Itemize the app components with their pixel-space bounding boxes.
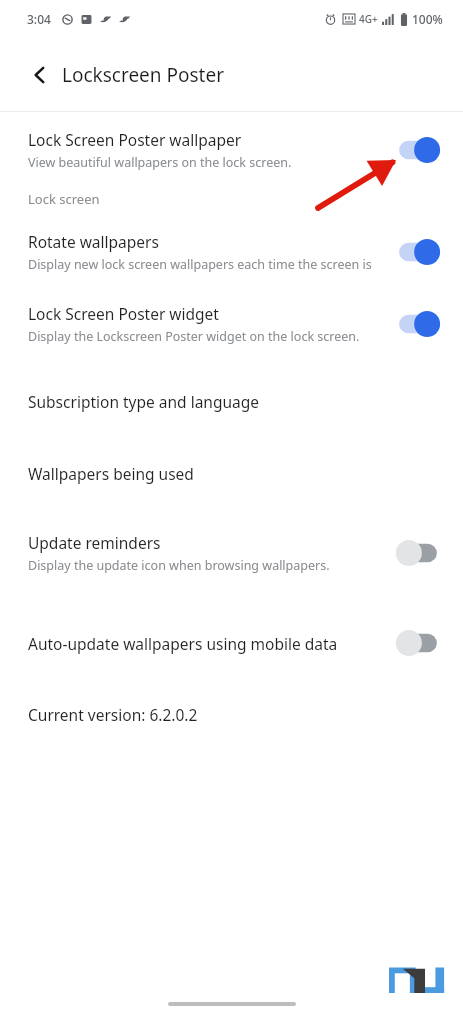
staticText: Update reminders [28, 532, 161, 553]
staticText: Display new lock screen wallpapers each … [28, 256, 385, 273]
button[interactable]: On [395, 237, 441, 267]
button[interactable]: On [395, 309, 441, 339]
button[interactable]: Auto-update wallpapers using mobile data [0, 628, 463, 658]
staticText: 100% [412, 11, 443, 27]
staticText: Lock Screen Poster wallpaper [28, 129, 242, 150]
staticText: Auto-update wallpapers using mobile data [28, 633, 338, 654]
staticText: 3:04 [27, 11, 51, 27]
button[interactable]: Off [395, 538, 441, 568]
button[interactable]: Lock screen [0, 185, 463, 213]
staticText: Subscription type and language [28, 391, 259, 412]
button[interactable]: Wallpapers being used [0, 461, 463, 485]
staticText: Display the Lockscreen Poster widget on … [28, 328, 360, 345]
button[interactable]: Lock Screen Poster widget [0, 303, 463, 345]
button[interactable]: Rotate wallpapers [0, 231, 463, 273]
staticText: 4G+ [359, 12, 378, 26]
staticText: Rotate wallpapers [28, 231, 159, 252]
button[interactable]: Back [20, 55, 60, 95]
staticText: Current version: 6.2.0.2 [28, 704, 198, 725]
staticText: Lockscreen Poster [62, 62, 225, 88]
button[interactable]: Subscription type and language [0, 389, 463, 413]
button[interactable]: Off [395, 628, 441, 658]
button[interactable]: On [395, 135, 441, 165]
staticText: View beautiful wallpapers on the lock sc… [28, 154, 292, 171]
staticText: Display the update icon when browsing wa… [28, 557, 330, 574]
staticText: Lock screen [28, 190, 100, 208]
button[interactable]: Current version: 6.2.0.2 [0, 702, 463, 726]
staticText: Wallpapers being used [28, 463, 194, 484]
staticText: Lock Screen Poster widget [28, 303, 219, 324]
button[interactable]: Update reminders [0, 532, 463, 574]
button[interactable]: Lock Screen Poster wallpaper [0, 129, 463, 171]
